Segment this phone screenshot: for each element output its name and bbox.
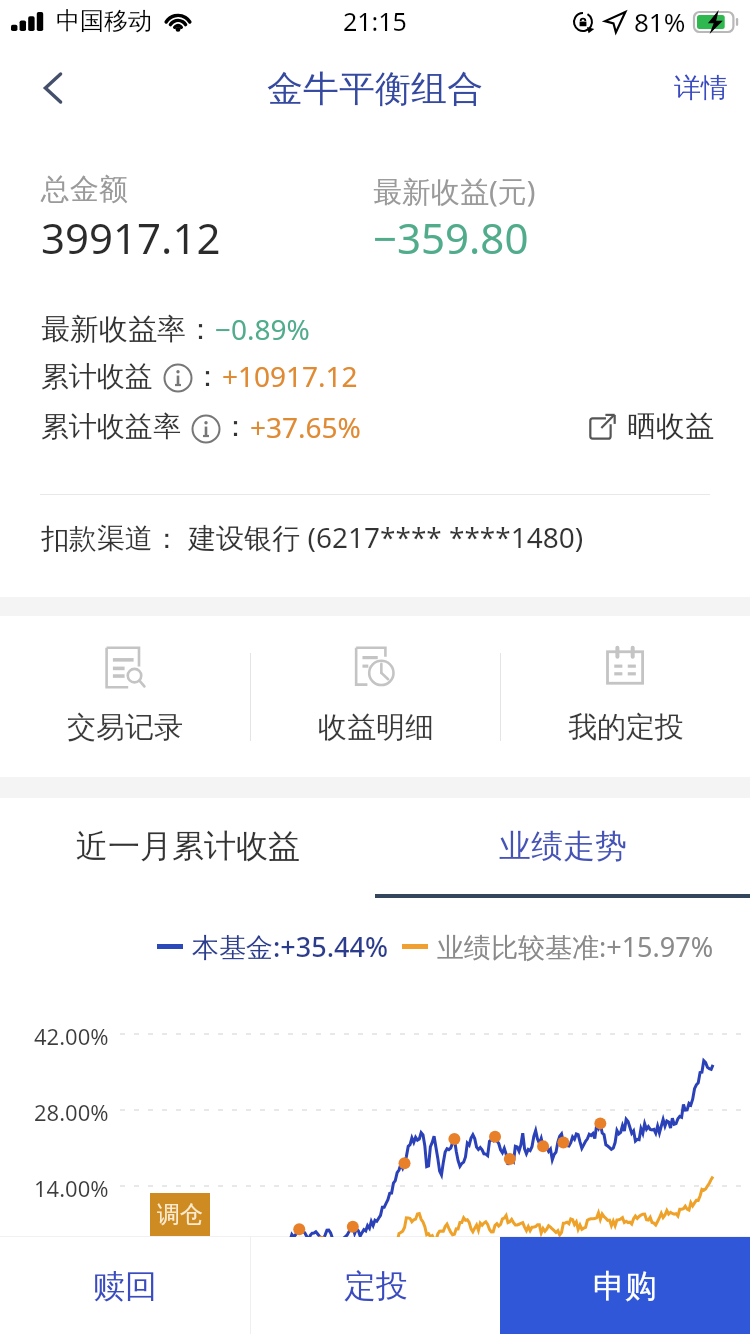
staticText: +10917.12 xyxy=(222,357,358,395)
staticText: 累计收益率 xyxy=(41,409,181,444)
staticText: 81% xyxy=(634,4,686,39)
staticText: 交易记录 xyxy=(67,709,183,746)
staticText: 累计收益 xyxy=(41,359,153,394)
button[interactable]: 交易记录 xyxy=(0,616,250,777)
staticText: 28.00% xyxy=(34,1097,109,1127)
staticText: 14.00% xyxy=(34,1173,109,1203)
staticText: 最新收益率： xyxy=(41,311,215,348)
staticText: 调仓 xyxy=(157,1200,203,1229)
staticText: 业绩比较基准:+15.97% xyxy=(437,928,714,965)
staticText: 最新收益(元) xyxy=(373,171,536,211)
staticText: 39917.12 xyxy=(41,209,221,266)
button[interactable]: 晒收益 xyxy=(582,402,720,451)
staticText: 21:15 xyxy=(343,4,407,38)
staticText: 赎回 xyxy=(93,1266,157,1306)
staticText: 本基金:+35.44% xyxy=(192,928,388,965)
staticText: 定投 xyxy=(344,1266,408,1306)
staticText: 总金额 xyxy=(41,171,128,208)
staticText: −0.89% xyxy=(215,310,310,348)
button[interactable]: 详情 xyxy=(652,48,750,128)
button[interactable]: 近一月累计收益 xyxy=(0,798,375,894)
staticText: ： xyxy=(221,408,250,445)
staticText: 业绩走势 xyxy=(499,826,627,866)
staticText: 晒收益 xyxy=(627,408,714,445)
button[interactable]: 赎回 xyxy=(0,1237,250,1334)
staticText: −359.80 xyxy=(373,209,529,266)
staticText: 申购 xyxy=(593,1266,657,1306)
staticText: ： xyxy=(193,358,222,395)
staticText: 收益明细 xyxy=(318,709,434,746)
button[interactable]: 收益明细 xyxy=(251,616,500,777)
staticText: 近一月累计收益 xyxy=(76,826,300,866)
button[interactable]: 调仓 xyxy=(150,1193,210,1236)
staticText: 详情 xyxy=(674,71,728,105)
staticText: 我的定投 xyxy=(568,709,684,746)
button[interactable]: 申购 xyxy=(500,1237,750,1334)
staticText: +37.65% xyxy=(250,408,361,446)
staticText: 扣款渠道： 建设银行 (6217**** ****1480) xyxy=(41,518,584,556)
staticText: 42.00% xyxy=(34,1021,109,1051)
button[interactable]: Back xyxy=(0,48,106,128)
staticText: 中国移动 xyxy=(56,6,152,36)
staticText: 金牛平衡组合 xyxy=(267,66,483,111)
button[interactable]: 定投 xyxy=(251,1237,500,1334)
button[interactable]: 我的定投 xyxy=(501,616,750,777)
button[interactable]: 业绩走势 xyxy=(375,798,750,894)
